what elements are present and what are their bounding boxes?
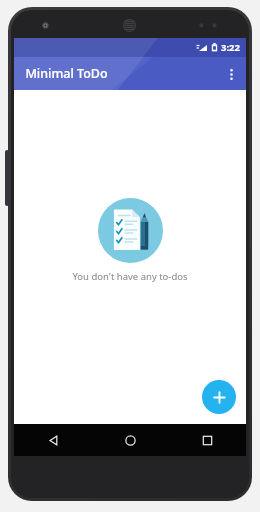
staticText: You don't have any to-dos (72, 270, 188, 283)
button[interactable]: More options (216, 59, 246, 89)
button[interactable]: Back (14, 424, 92, 456)
staticText: 3:22 (221, 41, 240, 54)
staticText: Minimal ToDo (25, 65, 108, 82)
button[interactable]: Recent apps (169, 424, 246, 456)
button[interactable]: Home (92, 424, 169, 456)
button[interactable]: Add to-do (202, 380, 236, 414)
